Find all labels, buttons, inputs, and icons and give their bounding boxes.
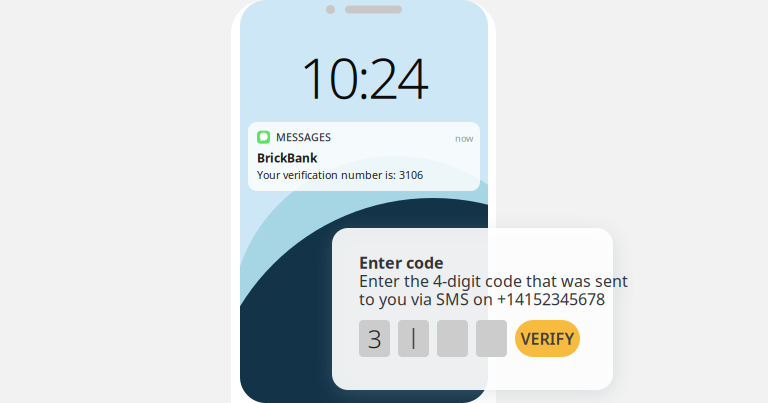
staticText: Enter the 4-digit code that was sent: [359, 270, 628, 291]
button[interactable]: Code digit field: [398, 320, 429, 357]
button[interactable]: Code digit 3: [359, 320, 390, 357]
button[interactable]: Code digit field: [476, 320, 507, 357]
button[interactable]: MESSAGES: [248, 122, 480, 191]
staticText: BrickBank: [257, 150, 317, 166]
button[interactable]: Code digit field: [437, 320, 468, 357]
staticText: MESSAGES: [276, 130, 331, 144]
staticText: Enter code: [359, 252, 444, 273]
staticText: Your verification number is: 3106: [257, 168, 423, 182]
staticText: VERIFY: [520, 328, 574, 349]
staticText: 10:24: [299, 40, 429, 114]
staticText: 3: [367, 322, 381, 355]
staticText: now: [455, 132, 473, 144]
staticText: to you via SMS on +14152345678: [359, 288, 605, 310]
button[interactable]: VERIFY: [515, 320, 580, 357]
